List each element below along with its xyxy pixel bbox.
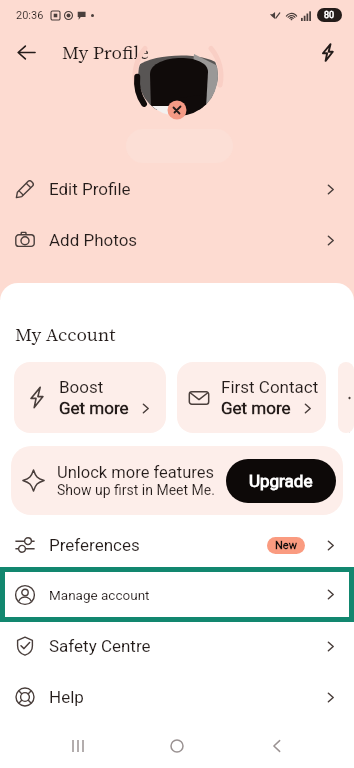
staticText: Get more bbox=[221, 398, 291, 418]
staticText: Help bbox=[49, 687, 84, 707]
button[interactable]: Back bbox=[8, 34, 44, 70]
staticText: Boost bbox=[59, 377, 104, 397]
staticText: Preferences bbox=[49, 535, 140, 555]
staticText: Upgrade bbox=[249, 471, 313, 491]
button[interactable]: Safety Centre bbox=[0, 622, 354, 670]
button[interactable]: Add Photos bbox=[0, 215, 354, 265]
staticText: Get more bbox=[59, 398, 129, 418]
button[interactable]: First Contact bbox=[177, 362, 326, 433]
button[interactable]: Help bbox=[0, 673, 354, 721]
button[interactable]: Manage account bbox=[0, 567, 354, 622]
button[interactable]: Edit Profile bbox=[0, 164, 354, 214]
button[interactable]: Home bbox=[155, 724, 199, 768]
button[interactable]: Boost bbox=[310, 35, 344, 69]
button[interactable]: Back bbox=[255, 724, 299, 768]
staticText: Safety Centre bbox=[49, 636, 151, 656]
staticText: 20:36 bbox=[16, 9, 44, 22]
staticText: First Contact bbox=[221, 377, 319, 397]
button[interactable]: Boost bbox=[14, 362, 166, 433]
staticText: New bbox=[275, 539, 297, 552]
button[interactable]: Upgrade bbox=[226, 459, 336, 503]
button[interactable]: Spotlight bbox=[338, 362, 354, 433]
staticText: My Account bbox=[15, 321, 116, 347]
staticText: Edit Profile bbox=[49, 179, 131, 199]
staticText: Add Photos bbox=[49, 230, 138, 250]
button[interactable]: Recent apps bbox=[56, 724, 100, 768]
staticText: Manage account bbox=[49, 587, 150, 603]
staticText: Unlock more features bbox=[57, 463, 214, 482]
staticText: My Profile bbox=[62, 39, 149, 65]
staticText: Show up first in Meet Me. bbox=[57, 482, 215, 498]
staticText: 80 bbox=[324, 10, 335, 21]
button[interactable]: Preferences bbox=[0, 521, 354, 569]
button[interactable]: Unlock more features bbox=[11, 446, 343, 515]
